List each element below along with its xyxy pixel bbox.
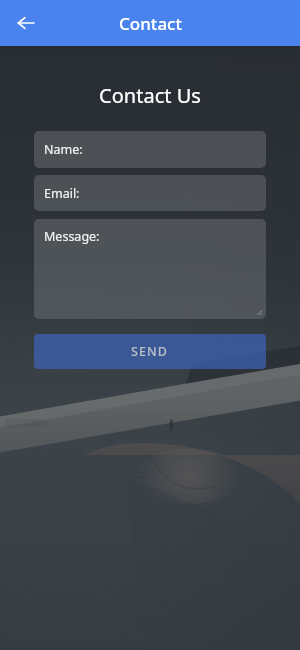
staticText: Message: bbox=[44, 228, 100, 245]
staticText: Contact bbox=[119, 12, 182, 35]
button[interactable]: Email: bbox=[34, 175, 266, 211]
staticText: SEND bbox=[131, 343, 169, 360]
staticText: Name: bbox=[44, 141, 83, 158]
button[interactable]: Message: bbox=[34, 219, 266, 319]
button[interactable]: Back bbox=[8, 5, 44, 41]
staticText: Email: bbox=[44, 185, 80, 202]
staticText: Contact Us bbox=[0, 82, 300, 109]
button[interactable]: SEND bbox=[34, 334, 266, 369]
button[interactable]: Name: bbox=[34, 131, 266, 168]
